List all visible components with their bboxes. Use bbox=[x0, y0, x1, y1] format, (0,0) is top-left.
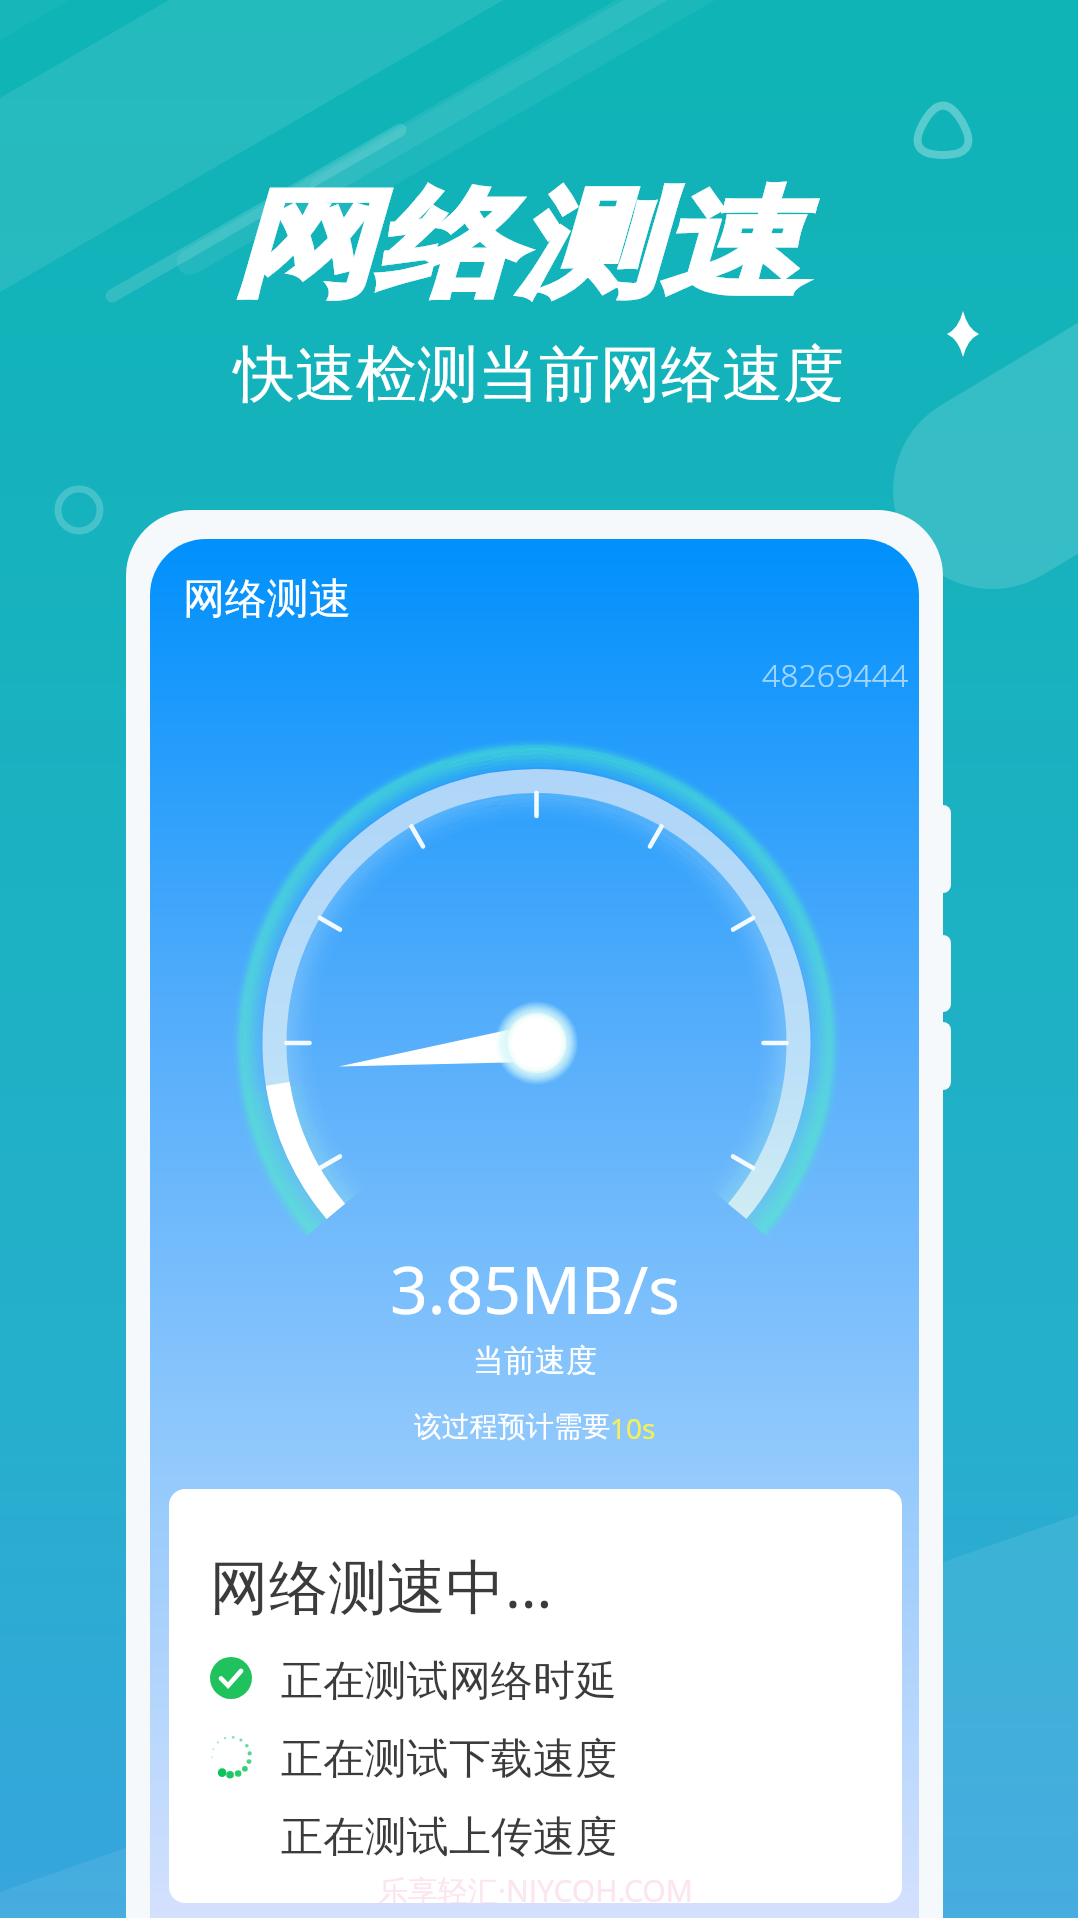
staticText: 10s bbox=[610, 1409, 656, 1447]
staticText: 网络测速中... bbox=[210, 1545, 553, 1626]
staticText: 正在测试上传速度 bbox=[281, 1811, 617, 1864]
staticText: 48269444 bbox=[762, 653, 909, 697]
staticText: 快速检测当前网络速度 bbox=[234, 336, 844, 413]
staticText: 当前速度 bbox=[473, 1341, 597, 1380]
staticText: 正在测试网络时延 bbox=[281, 1655, 617, 1708]
staticText: 正在测试下载速度 bbox=[281, 1733, 617, 1786]
other: Completed bbox=[210, 1657, 252, 1699]
other: In progress bbox=[208, 1733, 254, 1779]
button[interactable]: 正在测试上传速度 bbox=[205, 1804, 765, 1864]
button[interactable]: Completed bbox=[205, 1648, 765, 1708]
staticText: 该过程预计需要 bbox=[414, 1409, 610, 1444]
button[interactable]: In progress bbox=[205, 1726, 765, 1786]
staticText: 乐享轻汇·NJYCQH.COM bbox=[378, 1870, 693, 1903]
staticText: 网络测速 bbox=[183, 573, 351, 626]
staticText: 3.85MB/s bbox=[390, 1243, 680, 1333]
